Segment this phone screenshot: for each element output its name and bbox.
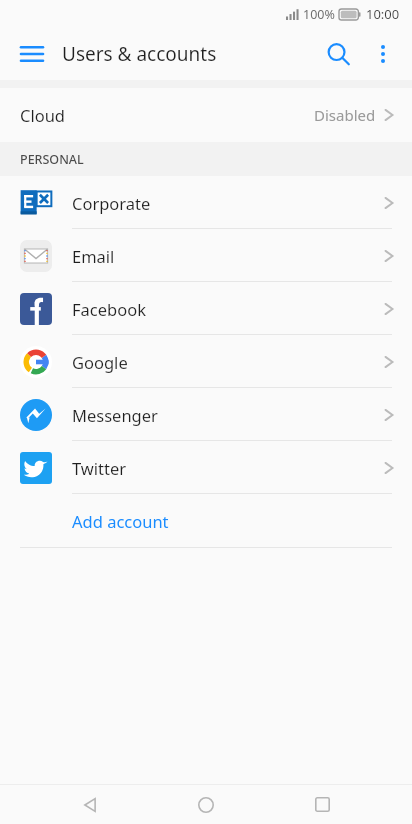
staticText: Email [72,245,115,267]
button[interactable]: More options [362,33,404,75]
button[interactable]: Email [0,229,412,282]
button[interactable]: Messenger [0,388,412,441]
staticText: Google [72,351,128,373]
button[interactable]: Menu [10,32,54,76]
staticText: Messenger [72,404,158,426]
staticText: Facebook [72,298,146,320]
staticText: Cloud [20,104,66,126]
staticText: Corporate [72,192,151,214]
button[interactable]: Add account [0,494,412,548]
staticText: Disabled [314,105,376,125]
button[interactable]: Cloud [0,88,412,142]
staticText: PERSONAL [20,151,84,168]
staticText: 10:00 [366,5,400,23]
staticText: 100% [303,6,335,23]
button[interactable]: Google [0,335,412,388]
button[interactable]: Facebook [0,282,412,335]
button[interactable]: Corporate [0,176,412,229]
button[interactable]: Back [64,785,116,824]
staticText: Add account [72,510,169,532]
staticText: Users & accounts [62,41,217,67]
staticText: Twitter [72,457,127,479]
button[interactable]: Twitter [0,441,412,494]
button[interactable]: Recent apps [296,785,348,824]
button[interactable]: Home [180,785,232,824]
button[interactable]: Search [316,32,360,76]
